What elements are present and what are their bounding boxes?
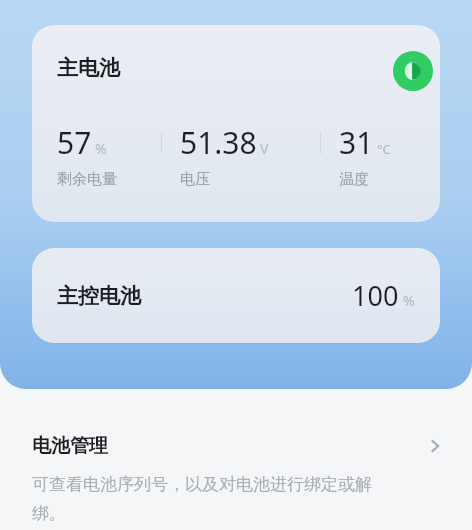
staticText: 剩余电量 [57, 170, 117, 189]
staticText: % [403, 291, 415, 310]
staticText: 57 [57, 122, 92, 163]
button[interactable]: 主控电池 [32, 248, 440, 343]
staticText: 电压 [180, 170, 210, 189]
staticText: 电池管理 [32, 434, 108, 458]
staticText: 主控电池 [57, 283, 141, 309]
staticText: 100 [352, 277, 399, 314]
other: Open battery management [424, 435, 446, 457]
staticText: 31 [339, 122, 374, 163]
staticText: 51.38 [180, 122, 257, 163]
staticText: °C [377, 140, 391, 158]
staticText: 可查看电池序列号，以及对电池进行绑定或解 [32, 474, 372, 495]
staticText: 温度 [339, 170, 369, 189]
button[interactable]: Battery health status [393, 51, 433, 91]
staticText: % [95, 139, 107, 158]
staticText: V [260, 139, 269, 158]
button[interactable]: 电池管理 [0, 434, 472, 530]
staticText: 主电池 [57, 55, 120, 81]
button[interactable]: 主电池 [32, 25, 440, 222]
staticText: 绑。 [32, 503, 66, 524]
